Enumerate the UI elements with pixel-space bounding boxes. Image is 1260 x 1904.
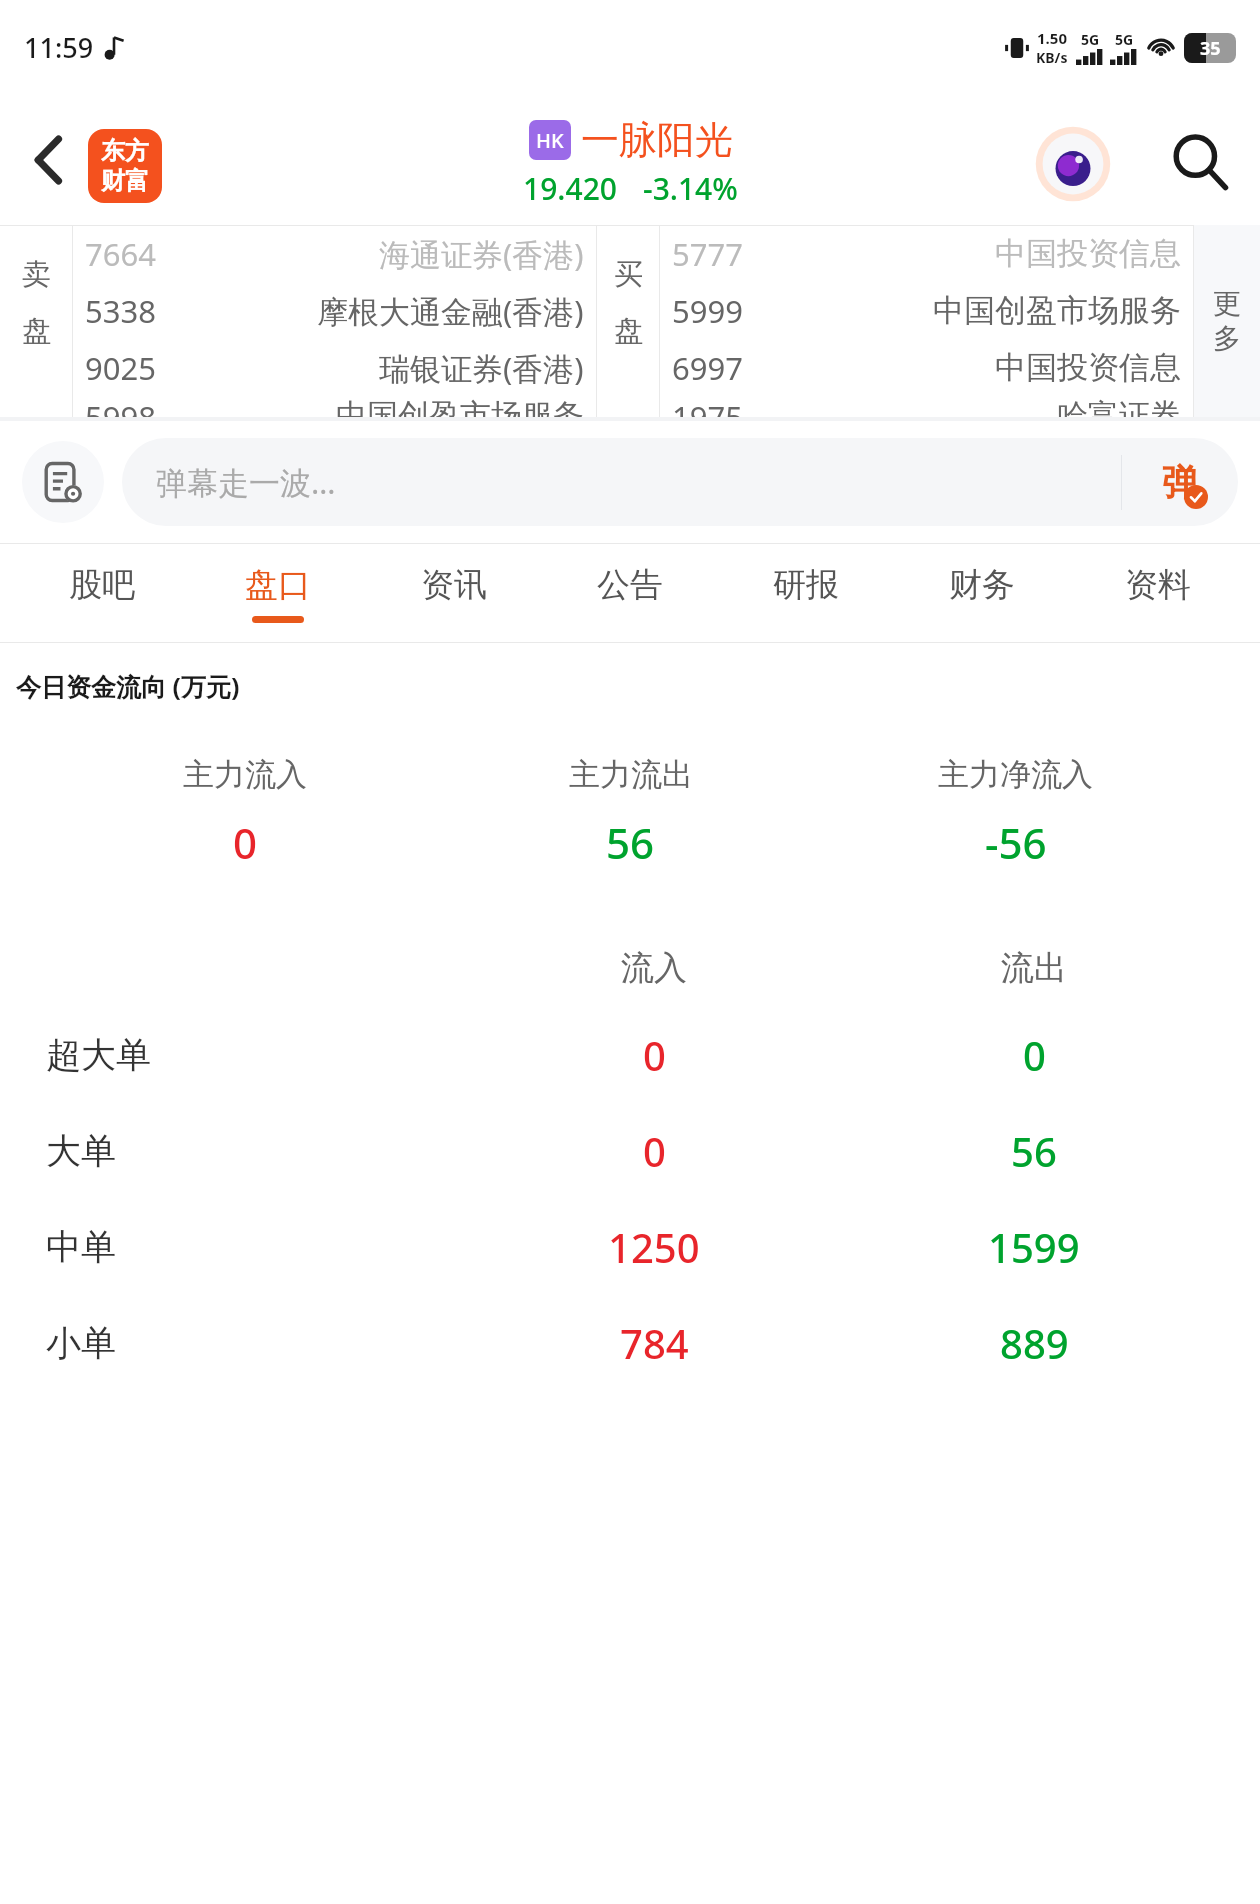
staticText: 5777 [672,233,743,275]
button[interactable]: Search [1162,124,1238,200]
staticText: 19.420 [523,168,617,209]
staticText: 5338 [85,290,156,332]
staticText: HK [536,127,564,154]
staticText: 中国投资信息 [995,234,1181,273]
staticText: 0 [1023,1028,1046,1082]
staticText: 1599 [988,1220,1080,1274]
staticText: 6997 [672,347,743,389]
staticText: 0 [643,1028,666,1082]
staticText: 一脉阳光 [581,116,733,164]
staticText: 财务 [949,564,1015,606]
button[interactable]: 研报 [718,544,894,642]
staticText: 流入 [621,947,687,989]
staticText: 5G [1115,30,1134,49]
staticText: 主力净流入 [938,755,1093,794]
staticText: 资料 [1125,564,1191,606]
button[interactable]: 资料 [1070,544,1246,642]
staticText: 中国创盈市场服务 [336,396,584,417]
staticText: 大单 [46,1129,116,1173]
staticText: -56 [985,814,1047,871]
staticText: 股吧 [69,564,135,606]
button[interactable]: Back [14,125,84,195]
button[interactable]: 资讯 [366,544,542,642]
staticText: 9025 [85,347,156,389]
staticText: 哈富证券 [1057,396,1181,417]
staticText: 35 [1200,36,1221,61]
staticText: 弹幕走一波… [156,461,336,503]
staticText: 784 [620,1316,689,1370]
button[interactable]: 大单 [0,1103,1260,1199]
staticText: 56 [606,814,655,871]
staticText: 5999 [672,290,743,332]
staticText: 1250 [608,1220,700,1274]
staticText: 1.50 [1037,28,1067,48]
staticText: 更 [1213,286,1241,321]
staticText: 主力流出 [569,755,693,794]
button[interactable]: 盘口 [190,544,366,642]
button[interactable]: Notes [22,441,104,523]
staticText: 11:59 [24,29,94,66]
button[interactable]: 小单 [0,1295,1260,1391]
staticText: 弹 [1162,460,1198,505]
staticText: 7664 [85,233,156,275]
button[interactable]: 超大单 [0,1007,1260,1103]
staticText: 中国投资信息 [995,348,1181,387]
button[interactable]: 东方财富 [88,129,162,203]
button[interactable]: 公告 [542,544,718,642]
staticText: 小单 [46,1321,116,1365]
staticText: 中单 [46,1225,116,1269]
staticText: 0 [643,1124,666,1178]
staticText: 瑞银证券(香港) [379,347,584,389]
staticText: 超大单 [46,1033,151,1077]
staticText: 1975 [672,396,743,417]
button[interactable]: Assistant [1034,125,1112,203]
staticText: 盘口 [245,564,311,606]
staticText: 0 [233,814,258,871]
button[interactable]: 更 [1194,225,1260,417]
staticText: 东方 [101,136,149,166]
staticText: 研报 [773,564,839,606]
staticText: 今日资金流向 (万元) [16,669,240,703]
staticText: 5998 [85,396,156,417]
staticText: 摩根大通金融(香港) [317,290,584,332]
staticText: 买 [614,256,643,293]
staticText: 海通证券(香港) [379,233,584,275]
staticText: 公告 [597,564,663,606]
button[interactable]: 中单 [0,1199,1260,1295]
staticText: -3.14% [643,168,738,209]
staticText: 资讯 [421,564,487,606]
button[interactable]: 财务 [894,544,1070,642]
staticText: 多 [1213,321,1241,356]
staticText: 财富 [101,166,149,196]
staticText: 盘 [22,313,51,350]
staticText: 中国创盈市场服务 [933,291,1181,330]
staticText: KB/s [1036,48,1068,67]
staticText: 5G [1081,30,1100,49]
button[interactable]: 股吧 [14,544,190,642]
button[interactable]: 弹幕走一波… [122,438,1238,526]
staticText: 889 [1000,1316,1069,1370]
staticText: 流出 [1001,947,1067,989]
staticText: 56 [1011,1124,1057,1178]
staticText: 主力流入 [183,755,307,794]
staticText: 卖 [22,256,51,293]
staticText: 盘 [614,313,643,350]
